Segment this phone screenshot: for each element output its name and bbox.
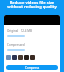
button[interactable]: [30, 55, 35, 60]
button[interactable]: [18, 55, 23, 60]
staticText: Compressed: [7, 43, 25, 47]
button[interactable]: [6, 55, 11, 60]
button[interactable]: [24, 55, 29, 60]
button[interactable]: Compress: [6, 65, 58, 70]
staticText: Reduce videos file size without reducing…: [2, 0, 62, 9]
button[interactable]: [12, 55, 17, 60]
staticText: Original 12.4 MB: [7, 29, 33, 33]
staticText: Compress: [25, 66, 40, 70]
